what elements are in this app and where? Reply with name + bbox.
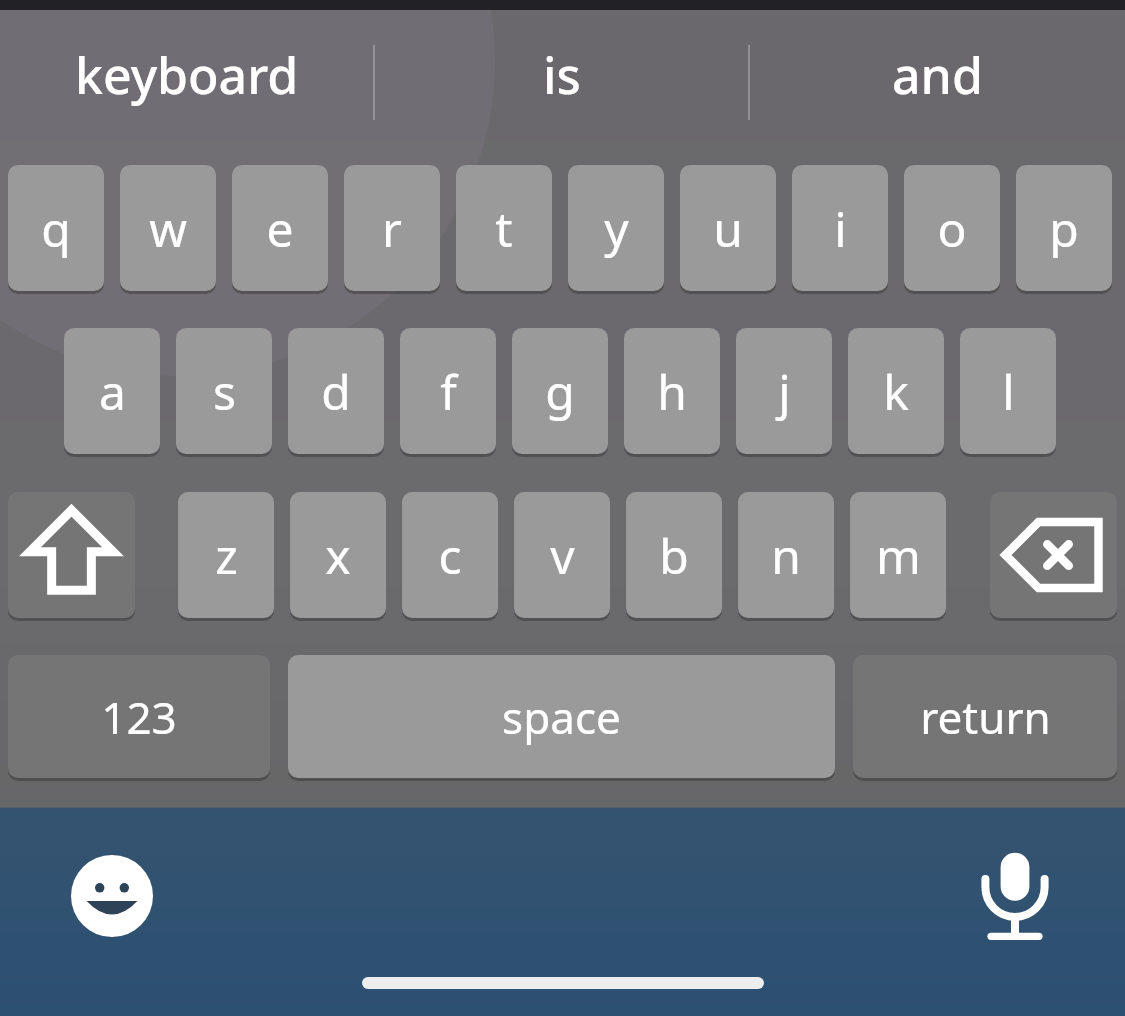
- staticText: b: [659, 523, 689, 588]
- button[interactable]: s: [176, 328, 272, 454]
- button[interactable]: r: [344, 165, 440, 291]
- button[interactable]: b: [626, 492, 722, 618]
- staticText: h: [657, 359, 687, 424]
- button[interactable]: h: [624, 328, 720, 454]
- staticText: r: [382, 196, 402, 261]
- staticText: w: [149, 196, 187, 261]
- staticText: c: [438, 523, 462, 588]
- button[interactable]: keyboard: [0, 10, 374, 140]
- staticText: y: [604, 196, 629, 261]
- staticText: x: [325, 523, 351, 588]
- button[interactable]: i: [792, 165, 888, 291]
- button[interactable]: p: [1016, 165, 1112, 291]
- button[interactable]: z: [178, 492, 274, 618]
- staticText: 123: [101, 687, 177, 747]
- staticText: f: [440, 359, 457, 424]
- staticText: space: [502, 687, 621, 747]
- staticText: u: [713, 196, 743, 261]
- staticText: p: [1049, 196, 1079, 261]
- button[interactable]: f: [400, 328, 496, 454]
- button[interactable]: space: [288, 655, 835, 778]
- button[interactable]: o: [904, 165, 1000, 291]
- staticText: keyboard: [75, 41, 299, 109]
- button[interactable]: k: [848, 328, 944, 454]
- button[interactable]: x: [290, 492, 386, 618]
- staticText: t: [495, 196, 513, 261]
- staticText: n: [771, 523, 801, 588]
- staticText: g: [545, 359, 575, 424]
- staticText: m: [876, 523, 921, 588]
- staticText: v: [550, 523, 575, 588]
- button[interactable]: 123: [8, 655, 270, 778]
- button[interactable]: g: [512, 328, 608, 454]
- button[interactable]: e: [232, 165, 328, 291]
- staticText: l: [1002, 359, 1015, 424]
- button[interactable]: d: [288, 328, 384, 454]
- staticText: and: [892, 41, 983, 109]
- button[interactable]: Delete: [990, 492, 1117, 618]
- staticText: d: [321, 359, 351, 424]
- staticText: s: [213, 359, 236, 424]
- staticText: j: [778, 359, 791, 424]
- staticText: k: [883, 359, 909, 424]
- staticText: i: [834, 196, 847, 261]
- button[interactable]: m: [850, 492, 946, 618]
- button[interactable]: u: [680, 165, 776, 291]
- staticText: a: [99, 359, 126, 424]
- button[interactable]: w: [120, 165, 216, 291]
- button[interactable]: v: [514, 492, 610, 618]
- button[interactable]: l: [960, 328, 1056, 454]
- staticText: o: [937, 196, 967, 261]
- button[interactable]: q: [8, 165, 104, 291]
- button[interactable]: return: [853, 655, 1117, 778]
- staticText: return: [920, 687, 1051, 747]
- staticText: e: [266, 196, 294, 261]
- button[interactable]: a: [64, 328, 160, 454]
- staticText: z: [215, 523, 238, 588]
- button[interactable]: Shift: [8, 492, 135, 618]
- button[interactable]: y: [568, 165, 664, 291]
- button[interactable]: j: [736, 328, 832, 454]
- button[interactable]: c: [402, 492, 498, 618]
- staticText: q: [41, 196, 71, 261]
- button[interactable]: Emoji: [71, 855, 153, 937]
- staticText: is: [543, 41, 581, 109]
- button[interactable]: Dictate: [975, 848, 1055, 944]
- button[interactable]: and: [749, 10, 1125, 140]
- button[interactable]: t: [456, 165, 552, 291]
- button[interactable]: is: [374, 10, 749, 140]
- button[interactable]: n: [738, 492, 834, 618]
